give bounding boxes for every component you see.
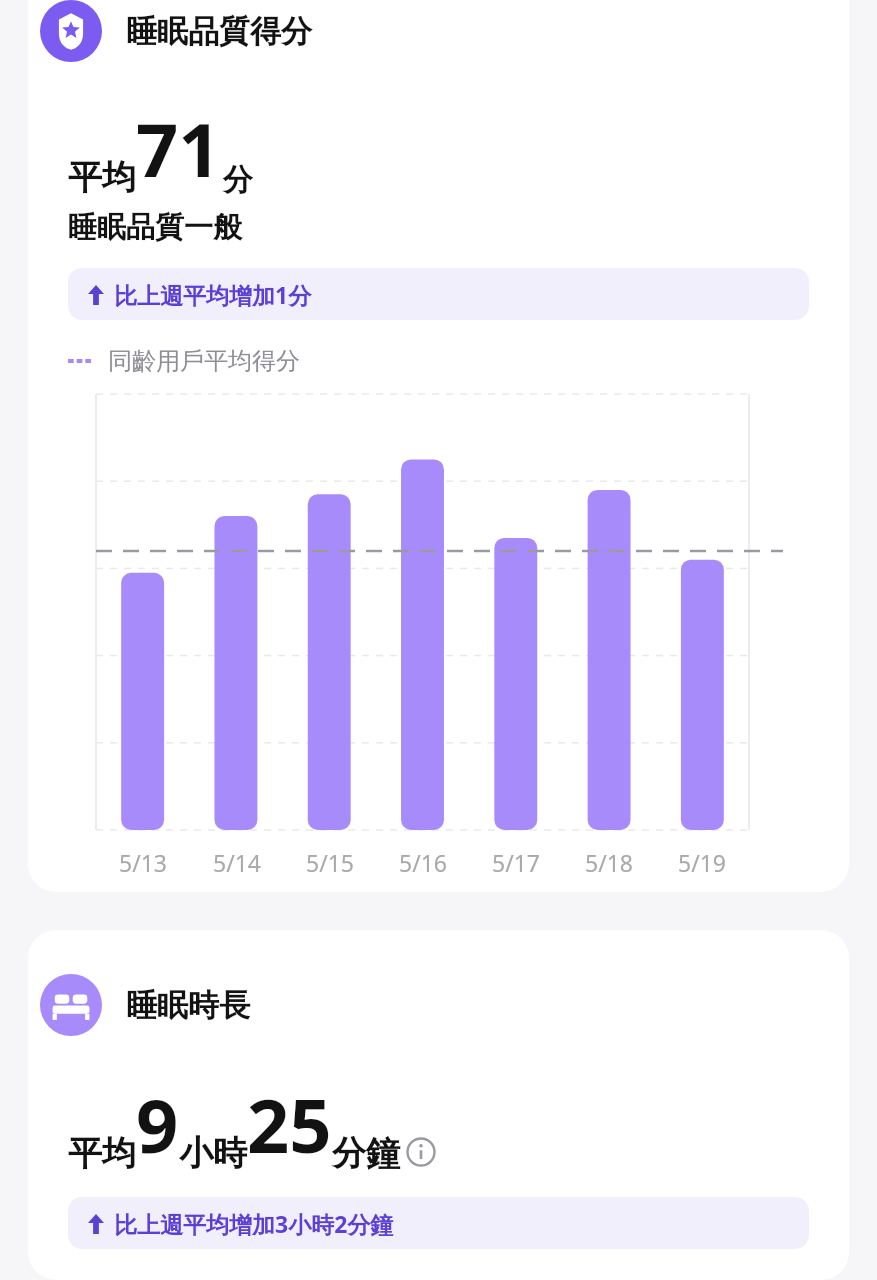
staticText: 5/19 (678, 847, 727, 878)
staticText: 睡眠品質得分 (126, 12, 312, 51)
button[interactable]: Sleep duration (28, 930, 849, 1280)
staticText: 比上週平均增加3小時2分鐘 (114, 1208, 394, 1239)
button[interactable]: 比上週平均增加3小時2分鐘 (68, 1197, 809, 1249)
other: Sleep quality score (40, 0, 102, 62)
staticText: 25 (247, 1074, 332, 1175)
staticText: 睡眠品質一般 (68, 209, 242, 246)
staticText: 5/14 (213, 847, 262, 878)
staticText: 平均 (68, 1132, 136, 1175)
button[interactable]: Info (406, 1137, 436, 1167)
button[interactable]: Sleep quality score (28, 0, 849, 892)
staticText: 同齡用戶平均得分 (108, 346, 300, 376)
staticText: 分鐘 (332, 1132, 400, 1175)
staticText: 5/18 (585, 847, 634, 878)
button[interactable]: 比上週平均增加1分 (68, 268, 809, 320)
staticText: 平均 (68, 156, 136, 199)
staticText: 5/16 (399, 847, 448, 878)
staticText: 小時 (179, 1132, 247, 1175)
staticText: 分 (223, 161, 253, 199)
other: Sleep duration (40, 974, 102, 1036)
staticText: 睡眠時長 (126, 986, 250, 1025)
staticText: 5/17 (492, 847, 541, 878)
staticText: 5/15 (306, 847, 355, 878)
staticText: 比上週平均增加1分 (114, 279, 312, 310)
staticText: 9 (136, 1074, 179, 1175)
staticText: 5/13 (119, 847, 168, 878)
staticText: 71 (136, 98, 221, 199)
